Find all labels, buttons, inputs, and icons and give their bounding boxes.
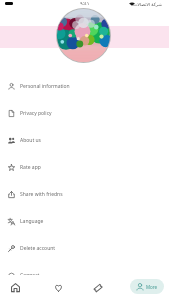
staticText: More — [146, 284, 158, 290]
staticText: Share with friedns — [20, 191, 63, 198]
staticText: Connect — [20, 272, 40, 279]
button[interactable]: Language — [0, 208, 169, 235]
button[interactable]: Connect — [0, 262, 169, 289]
button[interactable]: Offers — [87, 275, 109, 300]
button[interactable]: Personal information — [0, 73, 169, 100]
staticText: Delete account — [20, 245, 56, 252]
button[interactable]: About us — [0, 127, 169, 154]
button[interactable]: Delete account — [0, 235, 169, 262]
button[interactable]: Favourites — [47, 275, 69, 300]
button[interactable]: Home — [4, 275, 26, 300]
button[interactable]: More — [130, 279, 164, 294]
button[interactable]: Privacy policy — [0, 100, 169, 127]
staticText: About us — [20, 137, 41, 144]
button[interactable]: Profile photo — [57, 9, 110, 62]
staticText: ٩:٤١ — [80, 0, 90, 7]
staticText: Language — [20, 218, 44, 225]
staticText: Personal information — [20, 83, 70, 90]
staticText: Privacy policy — [20, 110, 52, 117]
button[interactable]: Rate app — [0, 154, 169, 181]
staticText: Rate app — [20, 164, 41, 171]
staticText: شركة الاتصالات — [133, 1, 163, 7]
button[interactable]: Share with friedns — [0, 181, 169, 208]
